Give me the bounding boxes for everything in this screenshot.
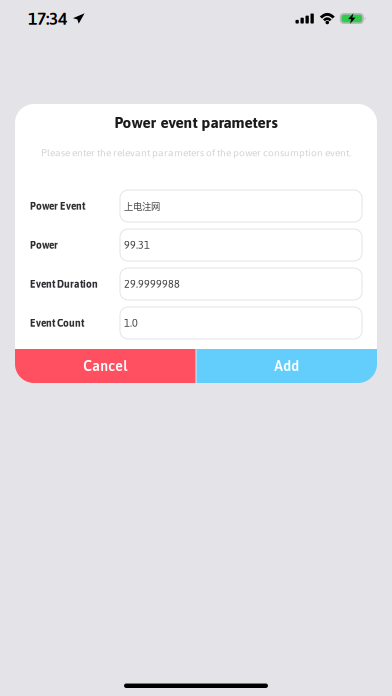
button[interactable]: Power (120, 229, 362, 261)
button[interactable]: Event Count (120, 307, 362, 339)
staticText: 1.0 (124, 317, 138, 329)
staticText: 29.9999988 (124, 278, 180, 290)
staticText: Add (274, 358, 299, 374)
button[interactable]: Event Duration (120, 268, 362, 300)
button[interactable]: Cancel (15, 349, 195, 383)
staticText: Power (30, 239, 58, 251)
button[interactable]: Add (196, 349, 377, 383)
staticText: Power Event (30, 200, 85, 212)
staticText: Event Count (30, 317, 84, 329)
button[interactable]: Power Event (120, 190, 362, 222)
staticText: 上电注网 (124, 199, 160, 213)
staticText: Event Duration (30, 278, 98, 290)
staticText: 17:34 (28, 9, 67, 28)
staticText: Cancel (83, 358, 127, 374)
staticText: Please enter the relevant parameters of … (41, 147, 351, 158)
staticText: Power event parameters (114, 114, 277, 131)
staticText: 99.31 (124, 239, 150, 251)
